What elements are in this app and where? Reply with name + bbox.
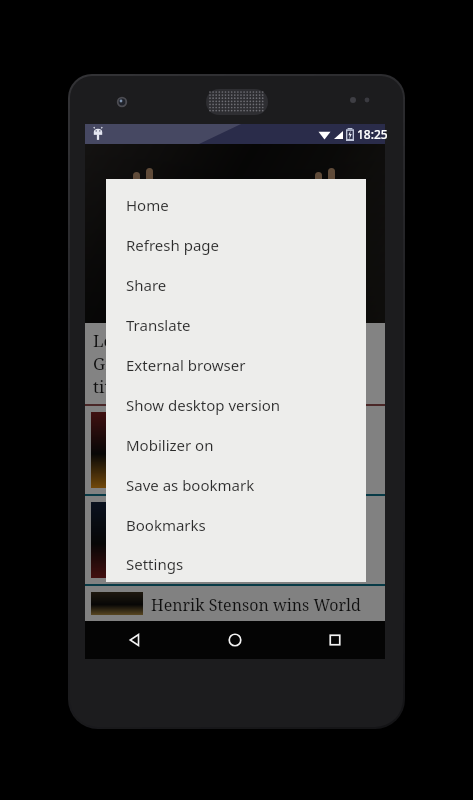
staticText: Settings: [126, 554, 184, 574]
button[interactable]: Back: [85, 621, 185, 659]
button[interactable]: Henrik Stenson wins World Tour: [85, 586, 385, 621]
staticText: 18:25: [357, 126, 388, 142]
button[interactable]: Home: [106, 185, 366, 225]
staticText: Home: [126, 195, 169, 215]
staticText: title rival Nico Rosberg retires: [93, 375, 336, 398]
button[interactable]: Rafael Nadal beaten in Beijing final: [85, 496, 385, 584]
button[interactable]: Bayern Munich 5-1 Werder Bremen: [85, 406, 385, 494]
button[interactable]: Recent apps: [285, 621, 385, 659]
staticText: Lewis Hamilton wins Russian Grand Prix a…: [93, 329, 377, 375]
staticText: Translate: [126, 315, 191, 335]
button[interactable]: Home: [185, 621, 285, 659]
button[interactable]: Save as bookmark: [106, 465, 366, 505]
staticText: Henrik Stenson wins World Tour: [151, 594, 379, 615]
staticText: Rafael Nadal beaten in Beijing final: [151, 504, 379, 548]
staticText: ATP tour report: [151, 548, 270, 570]
staticText: Save as bookmark: [126, 475, 255, 495]
button[interactable]: Bookmarks: [106, 505, 366, 545]
staticText: External browser: [126, 355, 246, 375]
button[interactable]: Mobilizer on: [106, 425, 366, 465]
button[interactable]: Refresh page: [106, 225, 366, 265]
button[interactable]: Show desktop version: [106, 385, 366, 425]
button[interactable]: Translate: [106, 305, 366, 345]
staticText: Show desktop version: [126, 395, 281, 415]
staticText: Mobilizer on: [126, 435, 214, 455]
staticText: Refresh page: [126, 235, 219, 255]
staticText: Share: [126, 275, 167, 295]
button[interactable]: Settings: [106, 545, 366, 582]
button[interactable]: Share: [106, 265, 366, 305]
staticText: Bookmarks: [126, 515, 206, 535]
staticText: Bayern Munich 5-1 Werder Bremen: [151, 414, 379, 458]
button[interactable]: External browser: [106, 345, 366, 385]
